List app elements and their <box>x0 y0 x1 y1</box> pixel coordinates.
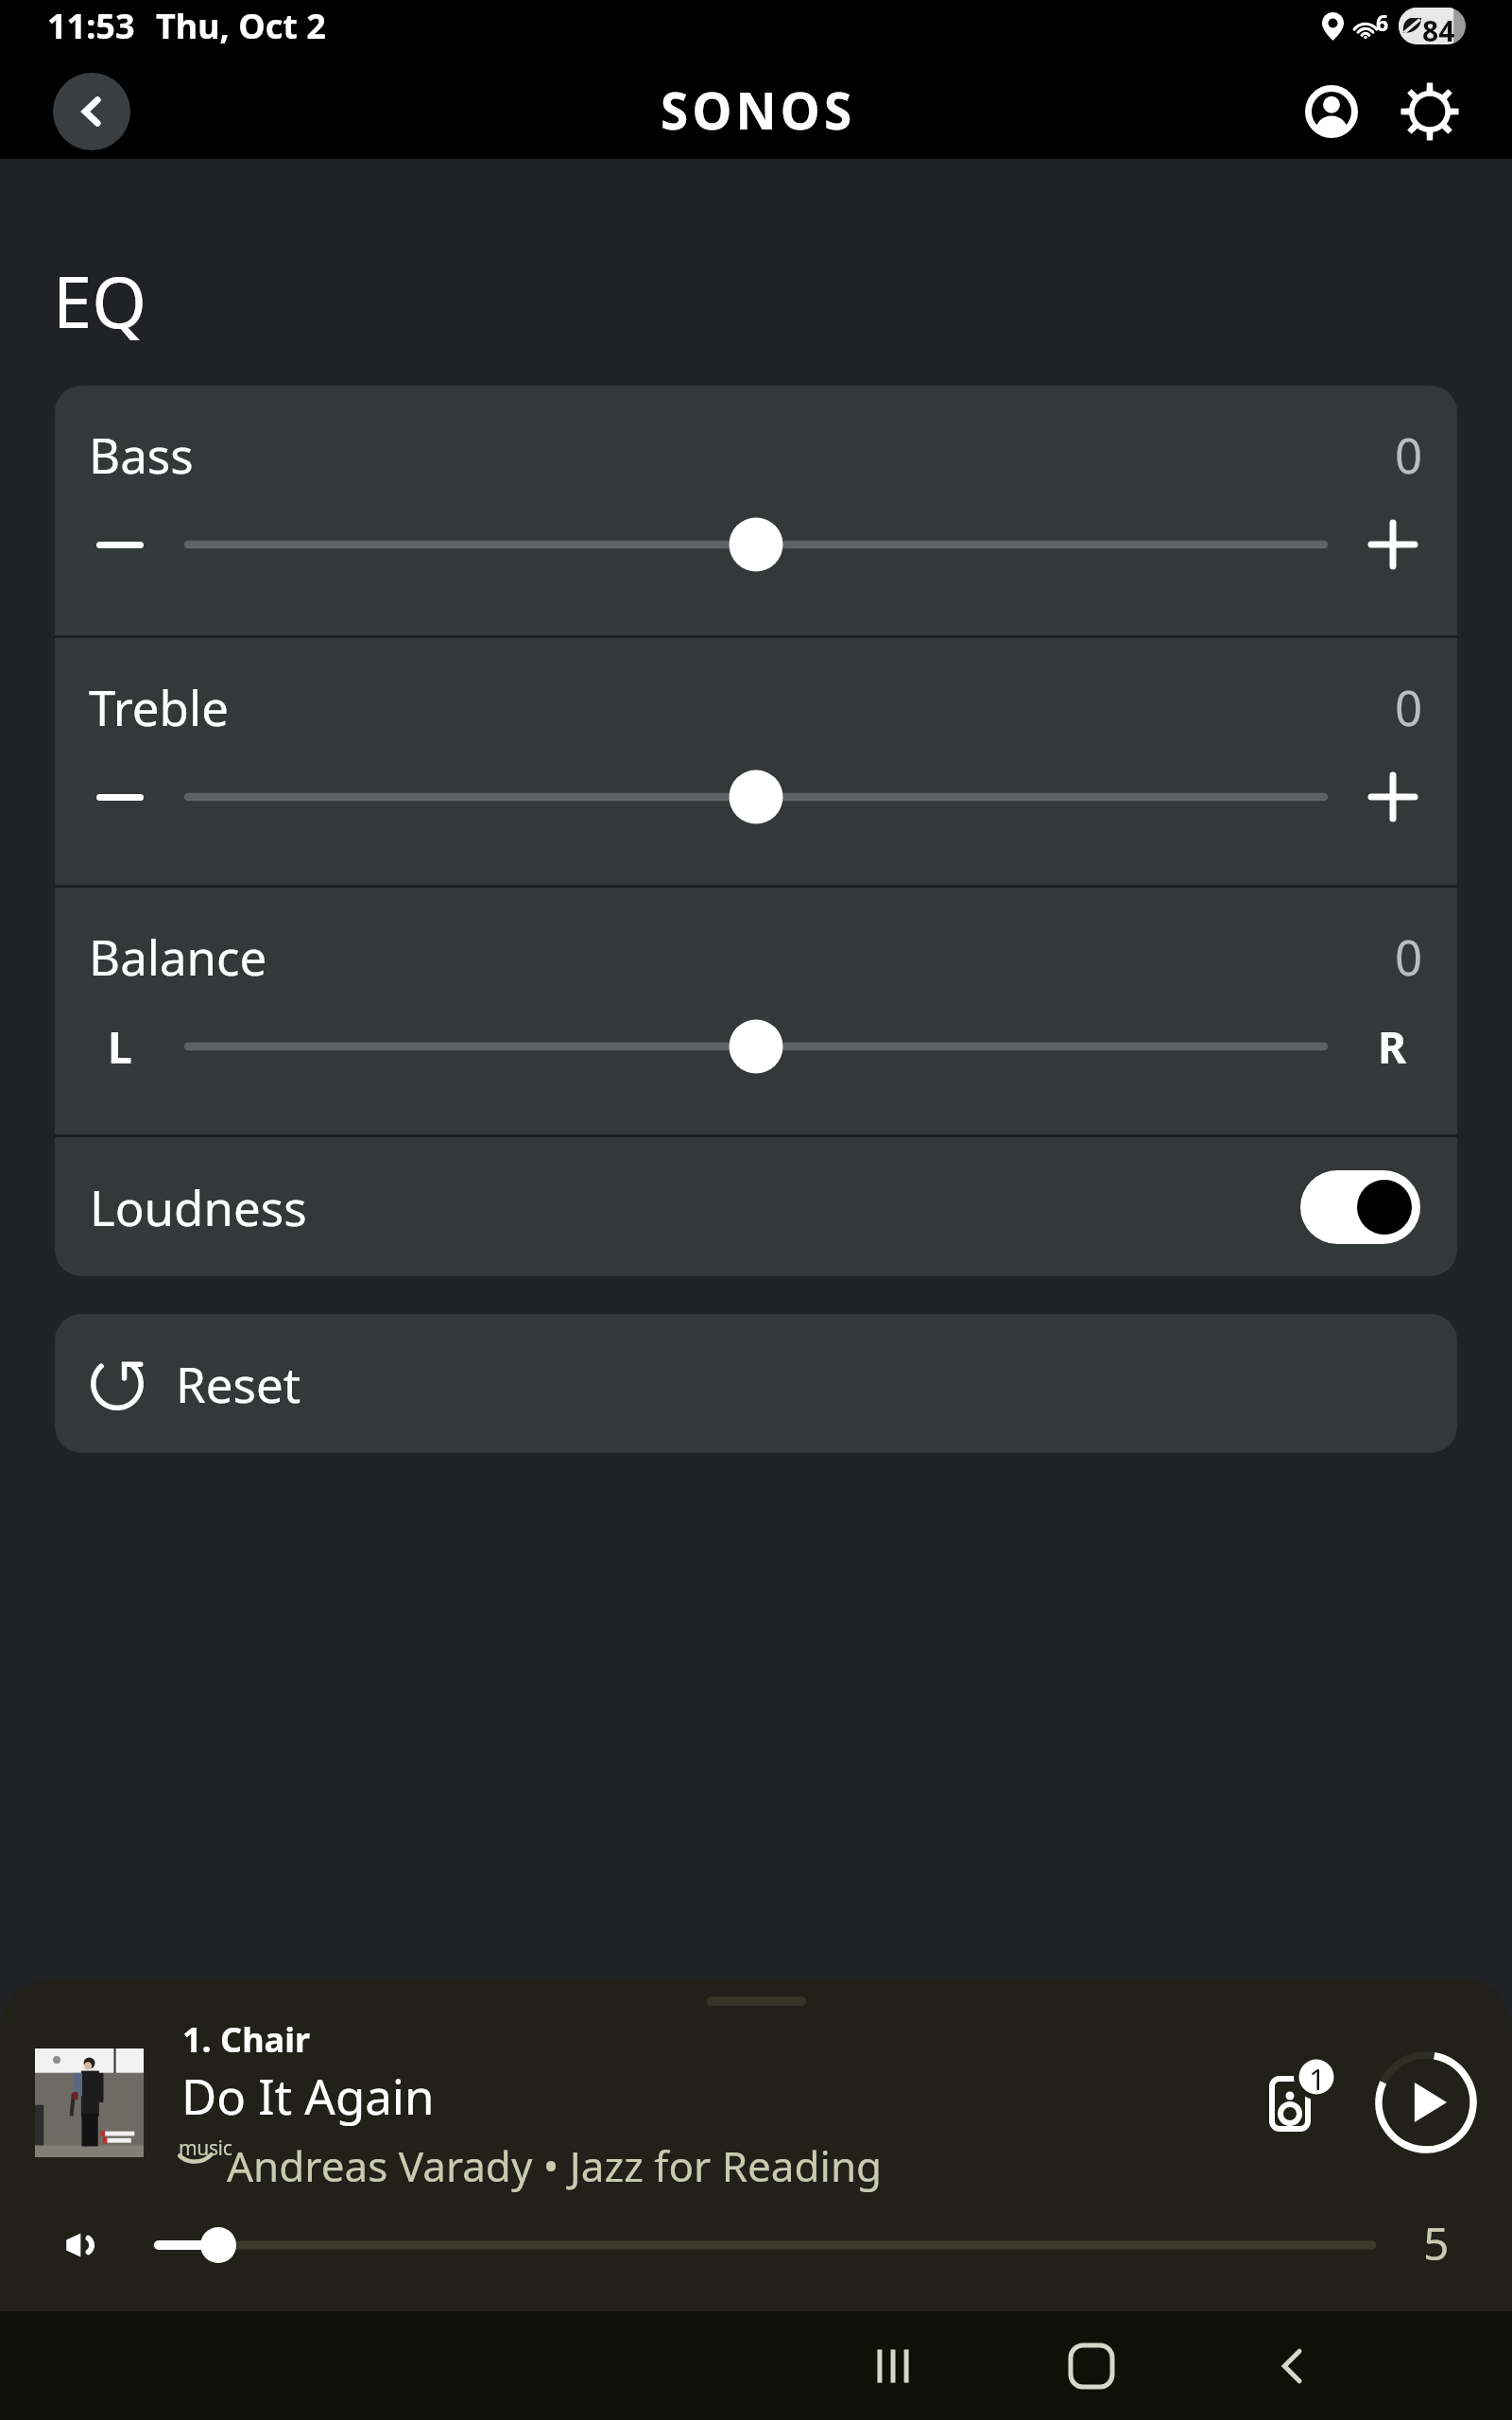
staticText: EQ <box>53 253 146 349</box>
staticText: R <box>1378 1017 1407 1077</box>
button[interactable]: Treble <box>55 638 1457 885</box>
button[interactable]: Settings <box>1394 76 1466 147</box>
button[interactable]: Account <box>1296 76 1367 147</box>
button[interactable]: Now playing: Do It Again <box>0 2014 1179 2193</box>
staticText: 1 <box>1309 2059 1326 2099</box>
button[interactable]: Balance <box>55 888 1457 1134</box>
button[interactable]: Home <box>1054 2328 1129 2404</box>
staticText: L <box>108 1017 132 1077</box>
button[interactable]: Increase Bass <box>1328 497 1457 592</box>
button[interactable]: Loudness <box>55 1137 1457 1276</box>
staticText: Loudness <box>90 1174 307 1239</box>
staticText: 0 <box>1395 674 1423 739</box>
staticText: Reset <box>176 1351 301 1416</box>
staticText: 6 <box>1376 8 1389 37</box>
button[interactable]: Decrease Bass <box>55 497 184 592</box>
staticText: music <box>179 2135 232 2162</box>
staticText: SONOS <box>661 76 856 144</box>
button[interactable]: Decrease Treble <box>55 750 184 844</box>
button[interactable]: Bass <box>55 386 1457 635</box>
button[interactable]: Volume <box>151 2224 1380 2266</box>
button[interactable]: Speakers, 1 room <box>1253 2053 1336 2152</box>
staticText: Andreas Varady • Jazz for Reading <box>227 2137 883 2194</box>
staticText: 1. Chair <box>182 2016 311 2063</box>
staticText: Thu, Oct 2 <box>156 3 326 49</box>
button[interactable]: Mute <box>62 2225 102 2265</box>
staticText: 0 <box>1395 924 1423 989</box>
button[interactable]: Recents <box>855 2328 931 2404</box>
button[interactable]: Back <box>1255 2328 1331 2404</box>
button[interactable]: Back <box>53 73 130 150</box>
staticText: Do It Again <box>181 2063 435 2128</box>
button[interactable]: Reset <box>55 1314 1457 1453</box>
staticText: 11:53 <box>47 3 135 49</box>
button[interactable]: Increase Treble <box>1328 750 1457 844</box>
staticText: 5 <box>1423 2212 1450 2273</box>
staticText: 0 <box>1395 422 1423 487</box>
staticText: Balance <box>89 924 267 989</box>
staticText: 84 <box>1422 11 1455 44</box>
staticText: Treble <box>89 674 229 739</box>
button[interactable]: Play <box>1369 2046 1483 2159</box>
staticText: Bass <box>89 422 194 487</box>
